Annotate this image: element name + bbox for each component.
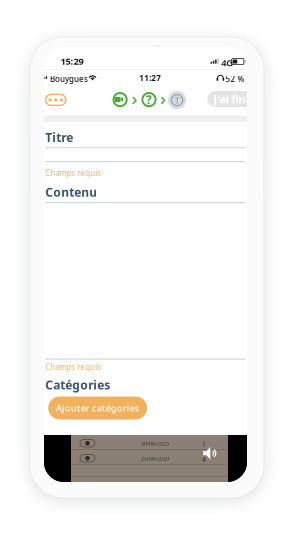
staticText: Catégories	[45, 377, 110, 393]
button[interactable]: Text step	[168, 91, 186, 109]
staticText: 4G	[221, 56, 233, 69]
button[interactable]: Ajouter catégories	[48, 396, 147, 419]
staticText: 52 %	[226, 74, 245, 84]
staticText: Contenu	[45, 184, 97, 200]
staticText: 4	[202, 455, 206, 464]
staticText: J'ai fini	[213, 92, 248, 106]
staticText: Champs requis	[45, 168, 101, 178]
button[interactable]: Question step	[141, 92, 157, 108]
staticText: 25/08/2020	[141, 455, 169, 462]
staticText: Ajouter catégories	[56, 402, 140, 414]
staticText: 30/06/2025	[141, 440, 169, 447]
staticText: 11:27	[139, 73, 161, 83]
button[interactable]: More options	[46, 94, 66, 105]
staticText: Titre	[45, 129, 73, 145]
staticText: T	[175, 94, 180, 106]
staticText: Bouygues	[50, 74, 88, 84]
staticText: 1	[202, 440, 206, 449]
staticText: 15:29	[61, 55, 84, 67]
button[interactable]: Video step	[112, 92, 128, 108]
button[interactable]: J'ai fini	[207, 91, 254, 107]
staticText: ?	[146, 92, 152, 107]
staticText: Champs requis	[45, 362, 101, 372]
